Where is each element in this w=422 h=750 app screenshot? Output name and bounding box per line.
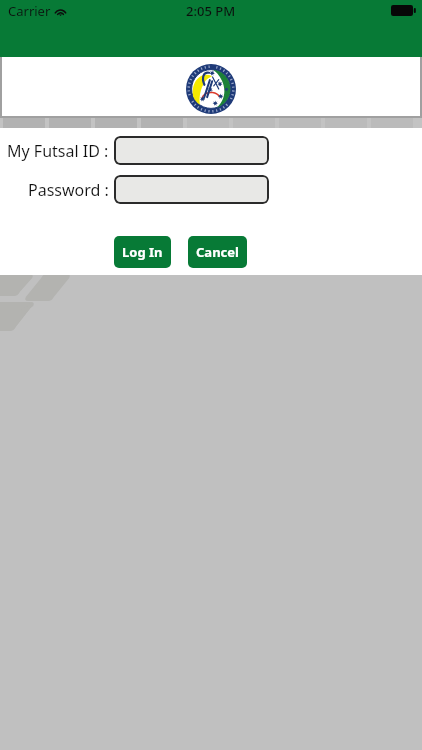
staticText: My Futsal ID : <box>7 140 109 162</box>
staticText: Carrier <box>8 2 51 20</box>
staticText: Cancel <box>196 243 239 261</box>
button[interactable]: Password : <box>114 175 269 204</box>
other: Australian Futsal Association logo <box>186 64 236 114</box>
other: Wi-Fi <box>54 6 67 16</box>
staticText: 2:05 PM <box>186 2 236 20</box>
staticText: Password : <box>28 179 109 201</box>
button[interactable]: Log In <box>114 236 171 268</box>
button[interactable]: Cancel <box>188 236 247 268</box>
other: Battery <box>391 5 416 16</box>
button[interactable]: Australian Futsal Association home <box>2 57 420 116</box>
button[interactable]: My Futsal ID : <box>114 136 269 165</box>
staticText: Log In <box>122 243 163 261</box>
